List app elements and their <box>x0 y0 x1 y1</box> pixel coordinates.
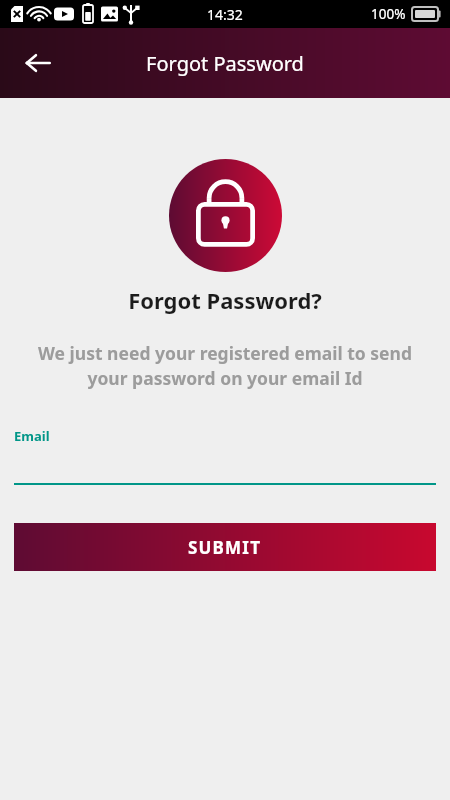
staticText: 14:32 <box>207 5 243 24</box>
staticText: SUBMIT <box>188 536 262 559</box>
button[interactable]: Email <box>14 427 436 485</box>
button[interactable]: SUBMIT <box>14 523 436 571</box>
button[interactable]: Back <box>16 41 60 85</box>
staticText: Forgot Password <box>0 50 450 77</box>
staticText: Email <box>14 427 50 445</box>
staticText: Forgot Password? <box>0 285 450 315</box>
staticText: We just need your registered email to se… <box>12 341 438 391</box>
staticText: 100% <box>371 5 406 23</box>
